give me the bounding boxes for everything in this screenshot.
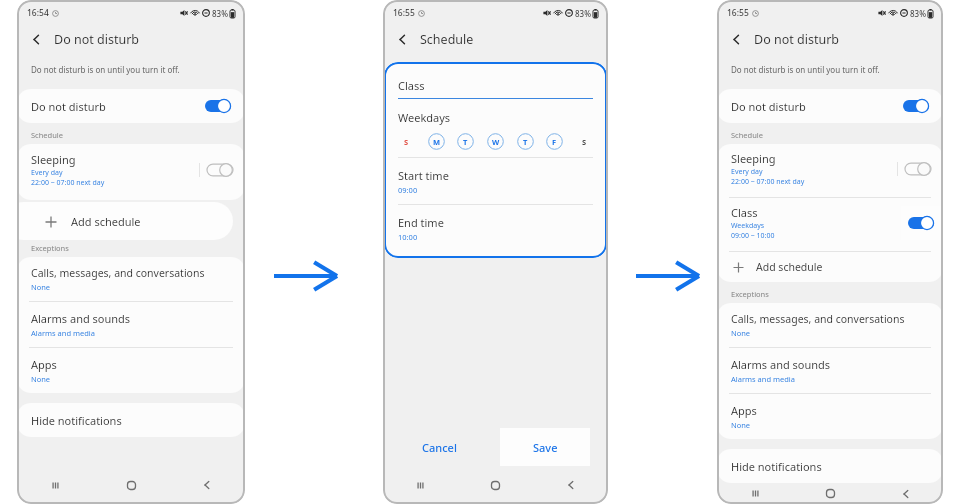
staticText: Sleeping xyxy=(731,151,776,166)
button[interactable]: Home xyxy=(793,483,868,504)
staticText: M xyxy=(433,137,441,147)
staticText: Hide notifications xyxy=(31,413,122,428)
button[interactable]: Add schedule xyxy=(17,202,233,240)
button[interactable]: Home xyxy=(458,470,533,500)
button[interactable]: Save xyxy=(500,428,590,466)
staticText: Save xyxy=(533,440,558,455)
staticText: Apps xyxy=(731,403,757,418)
button[interactable]: Do not disturb xyxy=(17,89,245,123)
staticText: Do not disturb is on until you turn it o… xyxy=(31,64,180,75)
button[interactable]: Back xyxy=(868,483,943,504)
staticText: Calls, messages, and conversations xyxy=(31,266,205,280)
button[interactable]: Recents xyxy=(383,470,458,500)
staticText: 83% xyxy=(910,8,926,19)
staticText: T xyxy=(463,137,468,147)
button[interactable]: Back xyxy=(25,28,47,50)
button[interactable]: Toggle xyxy=(908,216,934,230)
button[interactable]: Toggle xyxy=(207,163,233,177)
staticText: Do not disturb is on until you turn it o… xyxy=(731,64,880,75)
staticText: Apps xyxy=(31,357,57,372)
staticText: None xyxy=(731,328,751,338)
staticText: Hide notifications xyxy=(731,459,822,474)
staticText: Every day xyxy=(731,167,763,177)
staticText: Sleeping xyxy=(31,152,76,167)
staticText: Alarms and media xyxy=(731,374,795,384)
staticText: 16:54 xyxy=(27,7,49,19)
staticText: Weekdays xyxy=(398,110,451,125)
button[interactable]: Home xyxy=(93,470,169,500)
staticText: T xyxy=(523,137,528,147)
staticText: Weekdays xyxy=(731,221,765,231)
staticText: 16:55 xyxy=(727,7,749,19)
staticText: S xyxy=(582,137,587,147)
staticText: 83% xyxy=(575,8,591,19)
button[interactable]: W xyxy=(487,133,504,150)
staticText: 22:00 ~ 07:00 next day xyxy=(731,177,805,187)
button[interactable]: Alarms and sounds xyxy=(717,348,943,393)
staticText: 83% xyxy=(212,8,228,19)
staticText: 16:55 xyxy=(393,7,415,19)
staticText: S xyxy=(404,137,409,147)
button[interactable]: Add schedule xyxy=(717,252,943,282)
button[interactable]: Back xyxy=(391,28,413,50)
button[interactable]: Alarms and sounds xyxy=(17,302,245,347)
staticText: None xyxy=(31,282,51,292)
button[interactable]: Back xyxy=(169,470,245,500)
button[interactable]: Recents xyxy=(717,483,793,504)
button[interactable]: T xyxy=(517,133,534,150)
staticText: 10:00 xyxy=(398,232,418,242)
button[interactable]: S xyxy=(576,133,593,150)
staticText: Schedule xyxy=(731,130,763,140)
staticText: 09:00 ~ 10:00 xyxy=(731,231,775,241)
button[interactable]: Toggle xyxy=(205,99,231,113)
button[interactable]: Hide notifications xyxy=(717,449,943,483)
staticText: F xyxy=(552,137,557,147)
button[interactable]: Sleeping xyxy=(717,144,943,197)
button[interactable]: Back xyxy=(533,470,608,500)
button[interactable]: T xyxy=(457,133,474,150)
button[interactable]: S xyxy=(398,133,415,150)
staticText: End time xyxy=(398,215,444,230)
staticText: 22:00 ~ 07:00 next day xyxy=(31,178,105,188)
button[interactable]: Back xyxy=(725,28,747,50)
staticText: Alarms and media xyxy=(31,328,95,338)
staticText: W xyxy=(492,137,500,147)
staticText: Alarms and sounds xyxy=(731,357,831,372)
staticText: Every day xyxy=(31,168,63,178)
staticText: Class xyxy=(731,205,758,220)
button[interactable]: End time xyxy=(398,215,593,242)
staticText: Cancel xyxy=(422,440,457,455)
staticText: Schedule xyxy=(31,130,63,140)
staticText: Add schedule xyxy=(71,214,141,229)
button[interactable]: Start time xyxy=(398,168,593,195)
button[interactable]: Hide notifications xyxy=(17,403,245,437)
button[interactable]: Toggle xyxy=(903,99,929,113)
staticText: None xyxy=(31,374,51,384)
button[interactable]: Class xyxy=(398,78,593,93)
staticText: Exceptions xyxy=(31,243,69,253)
staticText: Start time xyxy=(398,168,449,183)
staticText: Calls, messages, and conversations xyxy=(731,312,905,326)
staticText: 09:00 xyxy=(398,185,418,195)
button[interactable]: Calls, messages, and conversations xyxy=(717,303,943,347)
button[interactable]: Calls, messages, and conversations xyxy=(17,257,245,301)
staticText: Do not disturb xyxy=(31,99,106,114)
staticText: Add schedule xyxy=(756,260,823,274)
staticText: Exceptions xyxy=(731,289,769,299)
button[interactable]: Apps xyxy=(17,348,245,393)
staticText: Alarms and sounds xyxy=(31,311,131,326)
button[interactable]: Toggle xyxy=(905,162,931,176)
button[interactable]: Apps xyxy=(717,394,943,439)
staticText: Do not disturb xyxy=(731,99,806,114)
staticText: Do not disturb xyxy=(54,31,139,48)
button[interactable]: Class xyxy=(717,198,943,251)
button[interactable]: F xyxy=(546,133,563,150)
staticText: Do not disturb xyxy=(754,31,839,48)
staticText: None xyxy=(731,420,751,430)
button[interactable]: Recents xyxy=(17,470,93,500)
button[interactable]: Do not disturb xyxy=(717,89,943,123)
button[interactable]: Sleeping xyxy=(17,144,245,200)
button[interactable]: Cancel xyxy=(383,424,496,470)
staticText: Schedule xyxy=(420,31,474,48)
button[interactable]: M xyxy=(428,133,445,150)
